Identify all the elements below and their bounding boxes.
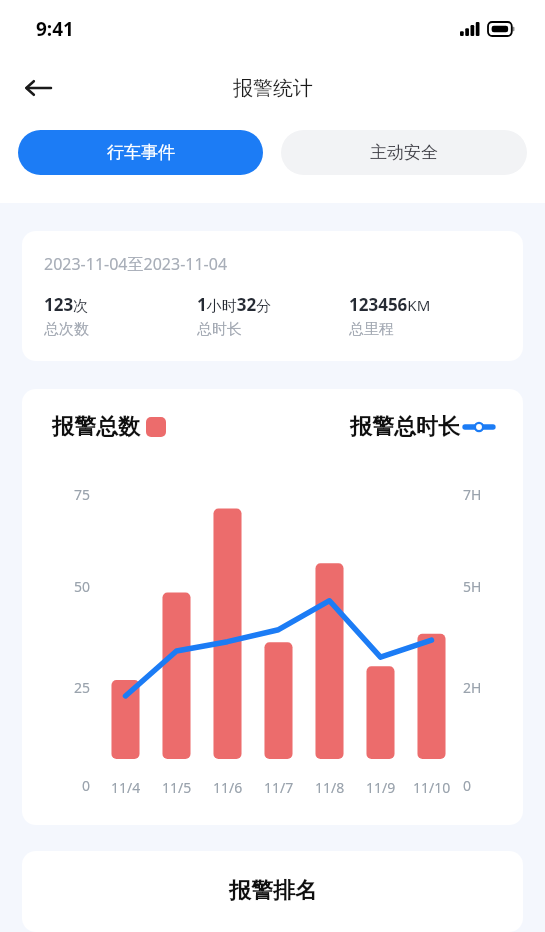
staticText: 7H [463,485,497,504]
staticText: 总次数 [44,320,89,339]
staticText: 5H [463,577,497,596]
staticText: 0 [56,776,90,795]
button[interactable]: 主动安全 [281,130,527,175]
staticText: 11/6 [213,778,243,797]
staticText: 报警统计 [233,76,313,101]
staticText: 11/8 [315,778,345,797]
button[interactable]: 2023-11-04至2023-11-04 [22,231,523,361]
staticText: 123456KM [349,293,431,316]
staticText: 2H [463,678,497,697]
button[interactable]: 报警排名 [22,851,523,932]
staticText: 主动安全 [370,142,438,163]
staticText: 11/7 [264,778,294,797]
staticText: 总里程 [349,320,394,339]
staticText: 50 [56,577,90,596]
staticText: 0 [463,776,497,795]
button[interactable]: Back [14,64,62,112]
staticText: 11/9 [366,778,396,797]
button[interactable]: 报警总数 [22,389,523,825]
staticText: 9:41 [36,16,74,42]
staticText: 11/4 [111,778,141,797]
staticText: 总时长 [197,320,242,339]
staticText: 75 [56,485,90,504]
staticText: 报警排名 [229,877,317,905]
staticText: 1小时32分 [197,293,272,316]
staticText: 行车事件 [107,142,175,163]
staticText: 11/5 [162,778,192,797]
staticText: 2023-11-04至2023-11-04 [44,253,228,275]
staticText: 123次 [44,293,89,316]
staticText: 报警总时长 [350,413,460,441]
staticText: 25 [56,678,90,697]
staticText: 报警总数 [52,413,140,441]
staticText: 11/10 [413,778,451,797]
button[interactable]: 行车事件 [18,130,263,175]
